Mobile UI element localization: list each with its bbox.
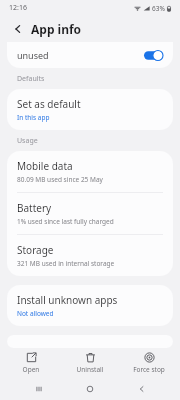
staticText: 12:16 [9, 3, 27, 13]
staticText: Usage [17, 136, 38, 146]
other: Uninstall [85, 352, 96, 363]
other: Open [26, 352, 37, 363]
staticText: 63% [152, 4, 165, 13]
staticText: App info [31, 21, 82, 37]
staticText: Storage [17, 243, 54, 257]
staticText: Battery [17, 201, 52, 215]
button[interactable]: Back [9, 20, 27, 38]
staticText: Force stop [121, 365, 177, 374]
other: Force stop [144, 352, 155, 363]
button[interactable]: Force stop [121, 350, 177, 376]
staticText: Mobile data [17, 159, 73, 173]
staticText: Not allowed [17, 309, 54, 318]
staticText: 80.09 MB used since 25 May [17, 175, 103, 184]
button[interactable]: Install unknown apps [7, 285, 173, 326]
staticText: In this app [17, 113, 50, 122]
button[interactable]: Open [3, 350, 59, 376]
staticText: unused [17, 49, 144, 61]
button[interactable]: Home [77, 378, 103, 400]
button[interactable]: unused [7, 42, 173, 68]
button[interactable]: Storage [7, 235, 173, 276]
button[interactable]: Uninstall [62, 350, 118, 376]
staticText: Set as default [17, 97, 81, 111]
button[interactable]: Battery [7, 193, 173, 234]
staticText: 1% used since last fully charged [17, 217, 114, 226]
button[interactable]: Toggle [144, 50, 163, 61]
button[interactable]: Set as default [7, 89, 173, 130]
staticText: Install unknown apps [17, 293, 118, 307]
button[interactable]: Recents [26, 378, 52, 400]
staticText: Uninstall [62, 365, 118, 374]
button[interactable]: Mobile data [7, 151, 173, 192]
button[interactable]: Back [129, 378, 155, 400]
staticText: Open [3, 365, 59, 374]
staticText: Defaults [17, 74, 45, 84]
staticText: 321 MB used in internal storage [17, 259, 115, 268]
